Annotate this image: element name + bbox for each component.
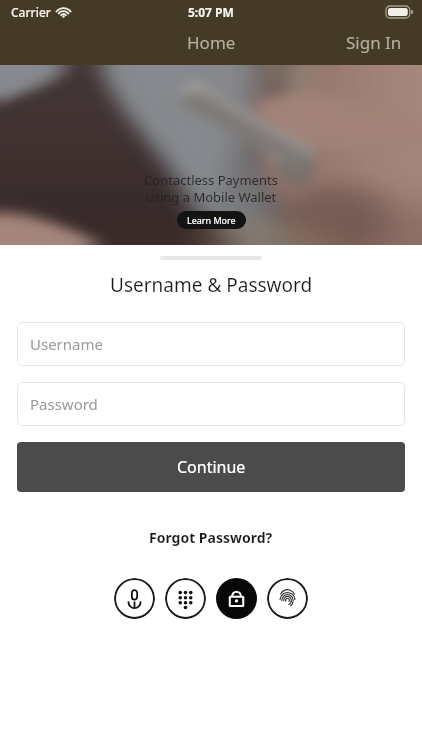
staticText: 5:07 PM (188, 4, 234, 20)
staticText: Username (30, 334, 103, 354)
button[interactable]: Learn More (177, 211, 246, 229)
staticText: Sign In (346, 31, 402, 54)
staticText: Password (30, 394, 98, 414)
button[interactable]: Voice input (114, 578, 155, 619)
staticText: Carrier (11, 4, 51, 20)
button[interactable]: Continue (17, 442, 405, 492)
button[interactable]: Fingerprint login (267, 578, 308, 619)
staticText: Username & Password (110, 272, 313, 298)
staticText: Continue (177, 456, 246, 478)
button[interactable]: Password (17, 382, 405, 426)
button[interactable]: Keypad (165, 578, 206, 619)
staticText: Forgot Password? (149, 528, 273, 547)
staticText: Contactless Payments using a Mobile Wall… (144, 171, 278, 206)
staticText: Home (187, 31, 236, 54)
button[interactable]: Password login (216, 578, 257, 619)
button[interactable]: Username (17, 322, 405, 366)
button[interactable]: Sign In (336, 25, 422, 60)
staticText: Learn More (187, 214, 236, 226)
button[interactable]: Forgot Password? (141, 525, 281, 550)
button[interactable]: Home (177, 25, 246, 60)
